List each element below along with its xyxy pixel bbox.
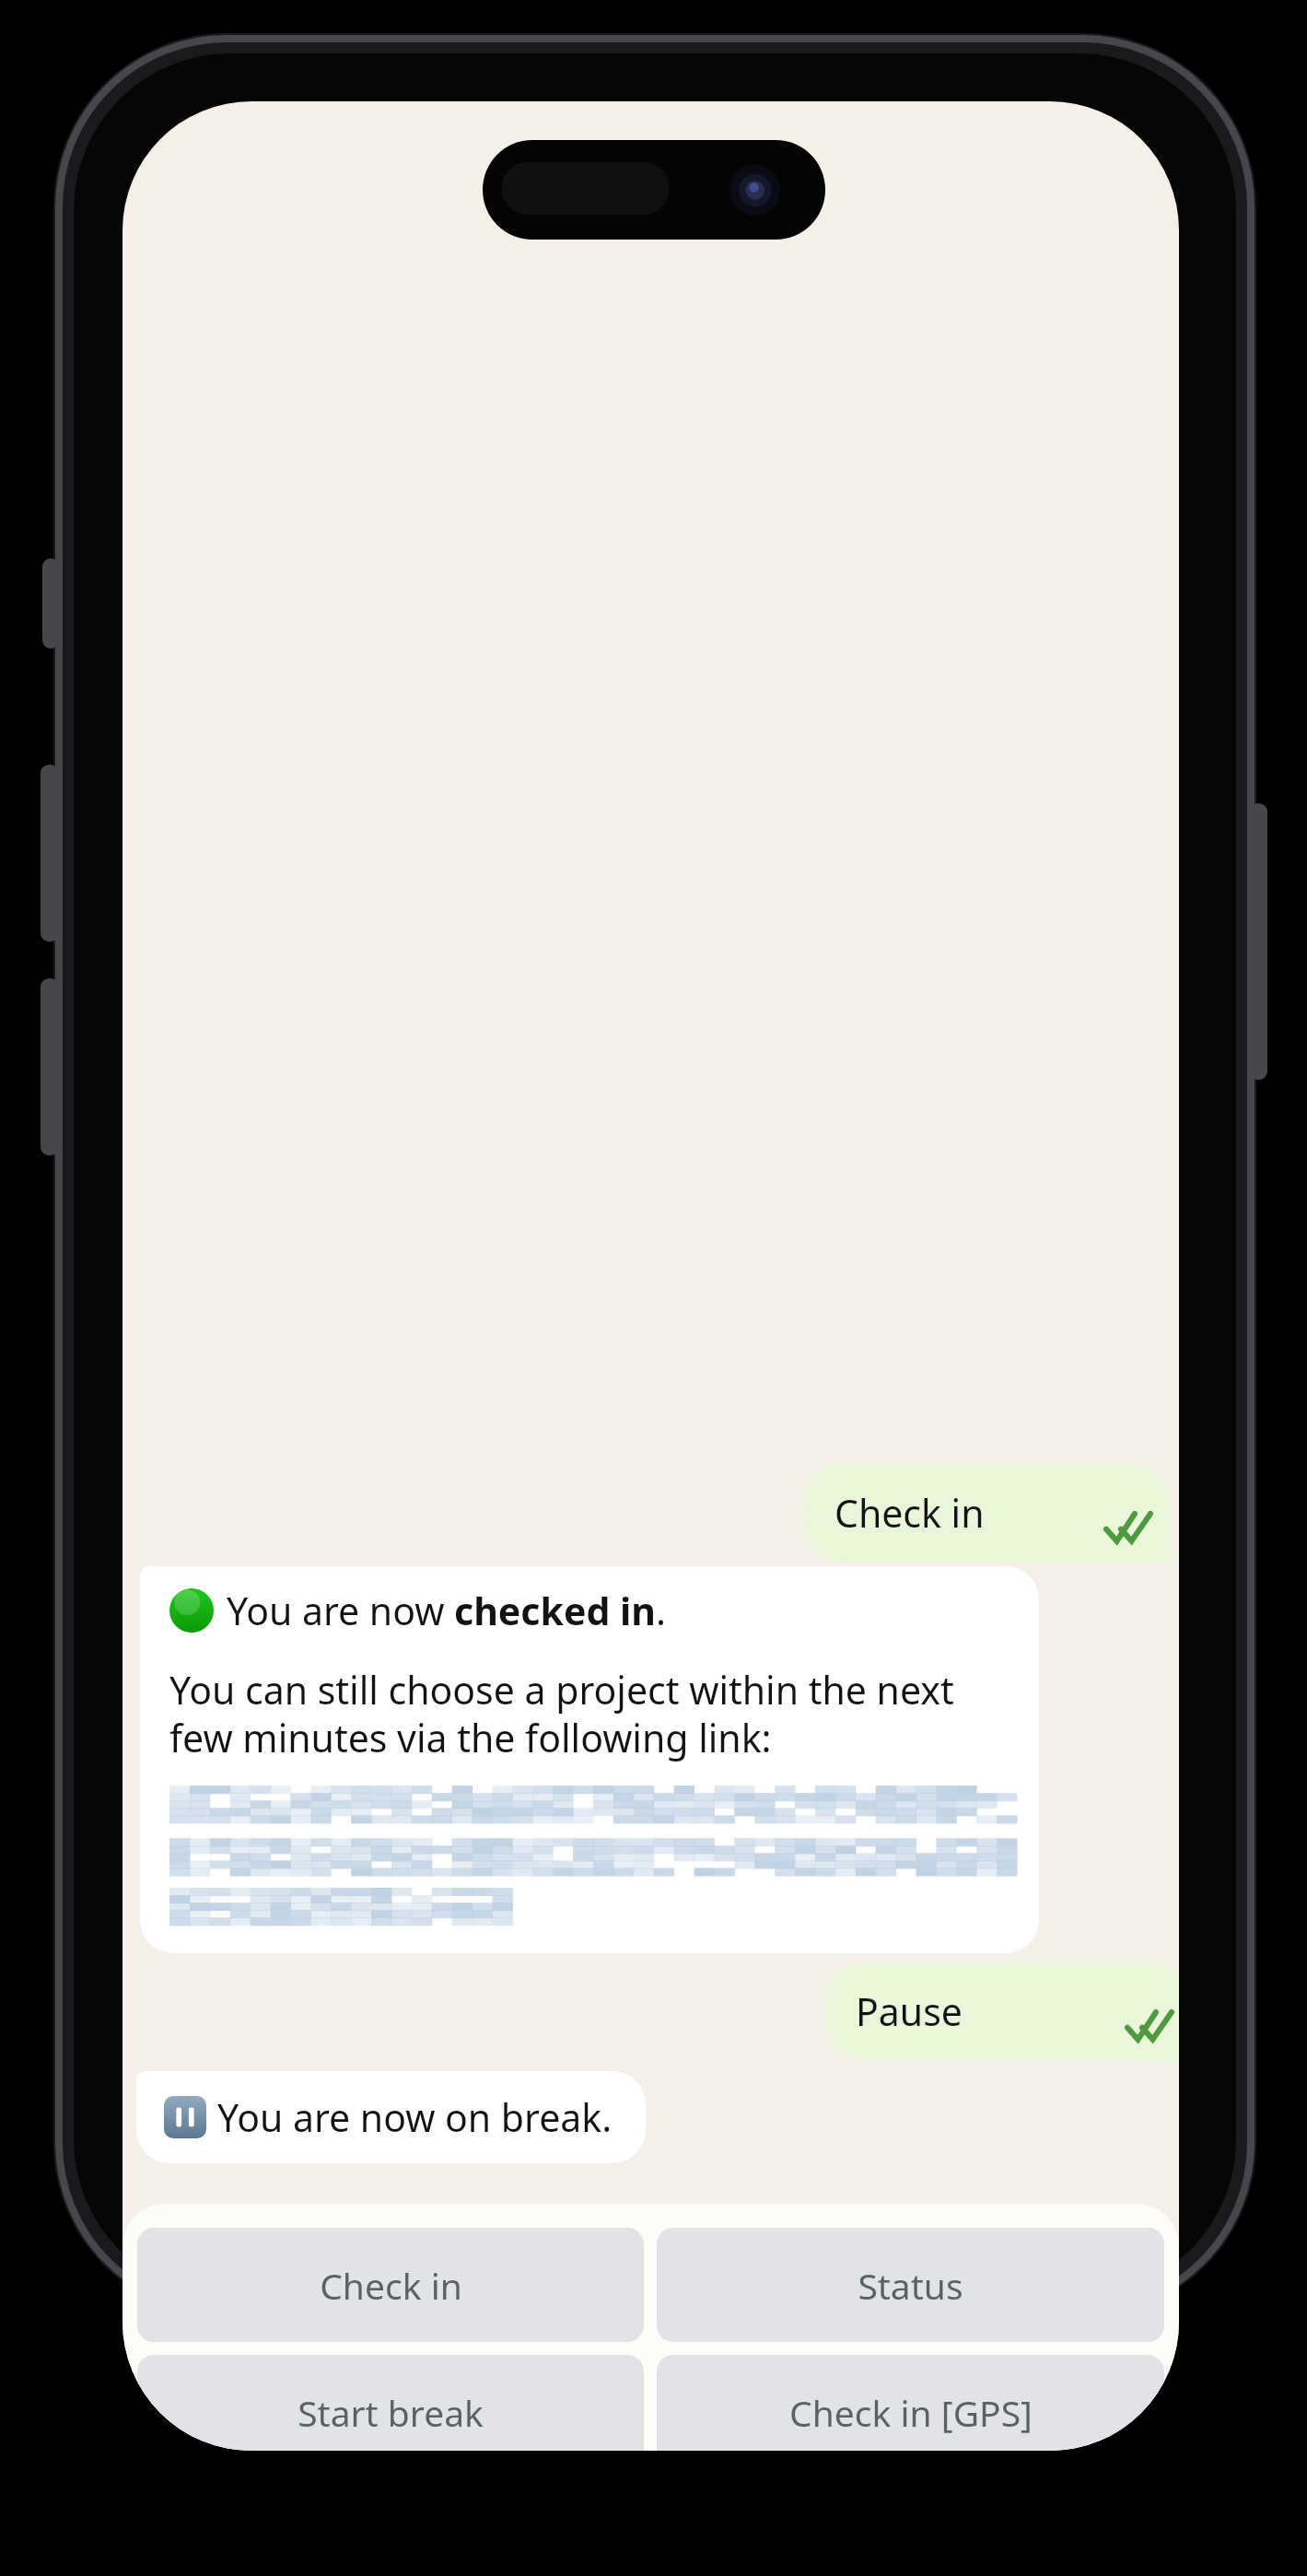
button[interactable]: Start break xyxy=(137,2355,644,2451)
button[interactable]: Check in [GPS] xyxy=(657,2355,1164,2451)
button[interactable]: Check in xyxy=(137,2228,644,2342)
staticText: Pause xyxy=(856,1985,963,2037)
button[interactable]: Pause xyxy=(824,1961,1179,2061)
staticText: Check in xyxy=(834,1487,985,1539)
button[interactable]: Check in xyxy=(803,1463,1170,1563)
button[interactable]: You are now on break. xyxy=(136,2071,646,2163)
staticText: Check in [GPS] xyxy=(789,2388,1033,2437)
staticText: Status xyxy=(858,2261,963,2310)
staticText: You are now checked in. xyxy=(227,1585,666,1636)
button[interactable]: Status xyxy=(657,2228,1164,2342)
staticText: You can still choose a project within th… xyxy=(169,1664,954,1763)
staticText: You are now on break. xyxy=(217,2091,613,2143)
staticText: Start break xyxy=(298,2388,484,2437)
button[interactable]: You are now checked in. xyxy=(140,1566,1039,1953)
staticText: Check in xyxy=(320,2261,462,2310)
